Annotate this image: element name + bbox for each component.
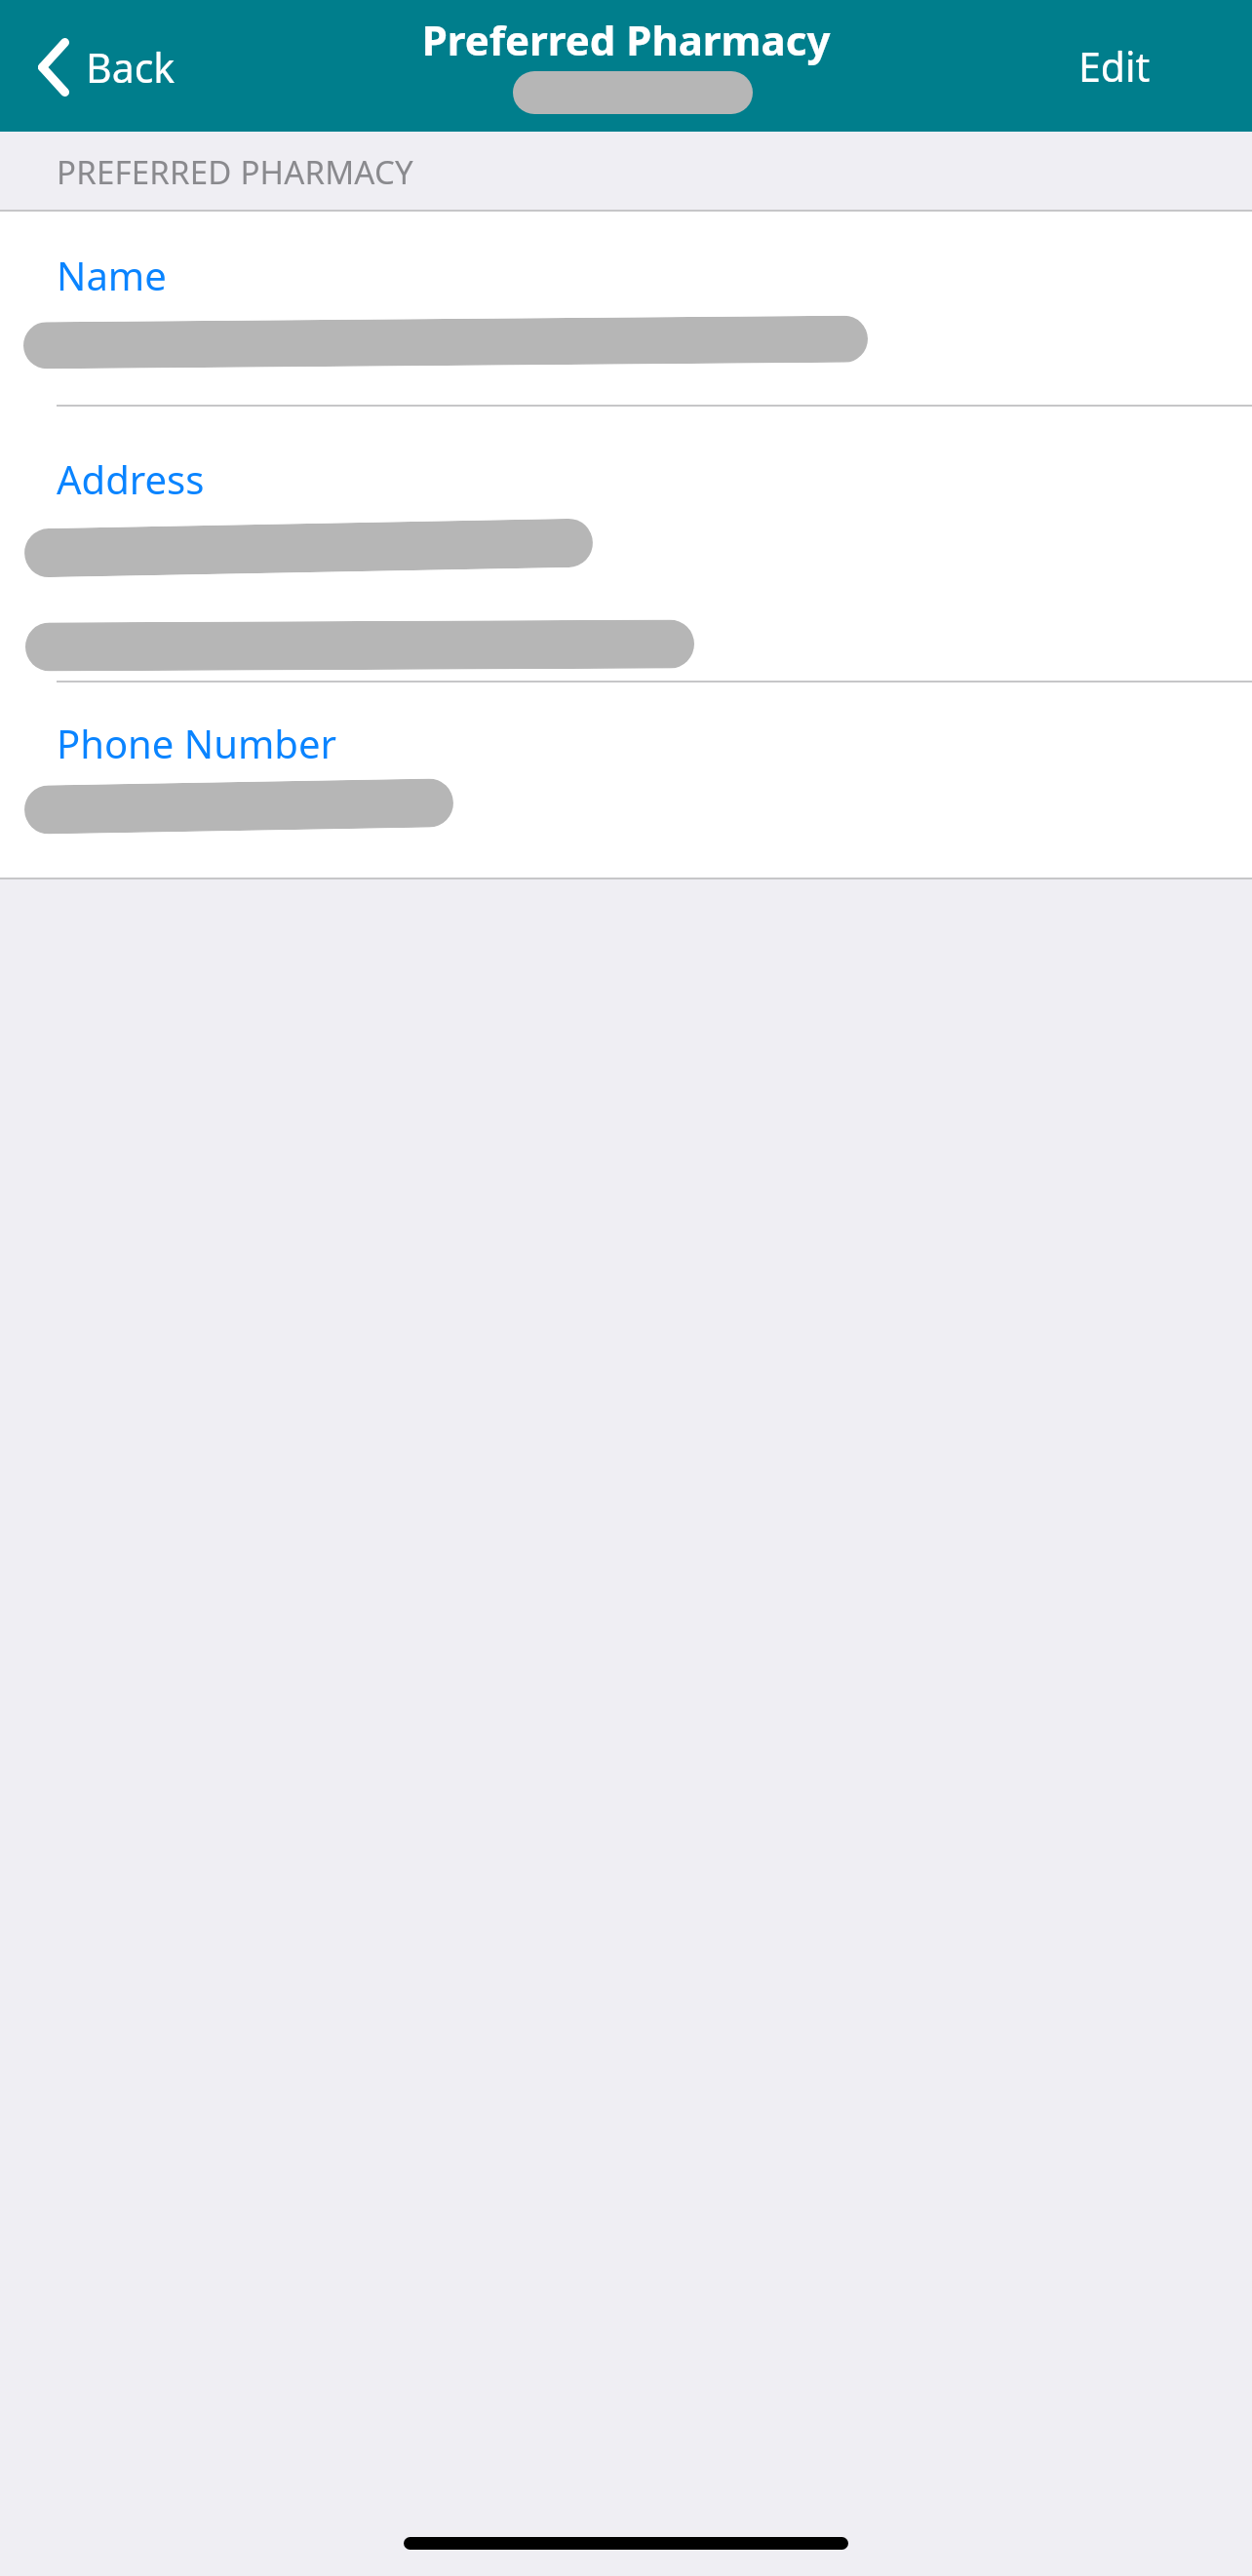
staticText: PREFERRED PHARMACY <box>57 150 413 194</box>
button[interactable]: Address <box>0 407 1252 681</box>
button[interactable]: Phone Number <box>0 683 1252 878</box>
button[interactable]: Name <box>0 212 1252 405</box>
staticText: Name <box>57 249 167 301</box>
staticText: Phone Number <box>57 717 336 769</box>
staticText: Back <box>86 40 176 95</box>
button[interactable]: Edit <box>1063 25 1166 107</box>
staticText: Preferred Pharmacy <box>0 12 1252 67</box>
staticText: Address <box>57 452 205 505</box>
staticText: Edit <box>1078 39 1151 94</box>
other: Home indicator <box>404 2537 848 2550</box>
button[interactable]: Back <box>23 29 193 105</box>
